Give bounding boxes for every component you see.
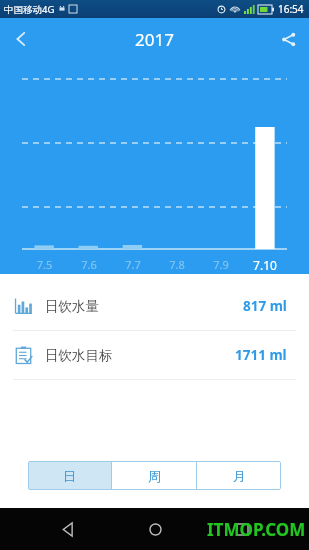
button[interactable]: 月 — [197, 461, 281, 490]
button[interactable]: Back — [48, 509, 88, 549]
button[interactable]: 日饮水目标 — [0, 331, 309, 379]
staticText: 日 — [63, 468, 76, 484]
staticText: 2017 — [42, 28, 267, 51]
staticText: 7.7 — [111, 257, 155, 272]
staticText: ITMOP.COM — [207, 518, 306, 541]
button[interactable]: 日饮水量 — [0, 282, 309, 330]
staticText: 817 ml — [243, 297, 287, 315]
staticText: 周 — [148, 468, 161, 484]
staticText: 1711 ml — [235, 346, 287, 364]
staticText: 7.8 — [155, 257, 199, 272]
staticText: 日饮水量 — [45, 298, 99, 315]
staticText: 月 — [233, 468, 246, 484]
button[interactable]: 周 — [112, 461, 196, 490]
staticText: 7.6 — [67, 257, 111, 272]
staticText: 7.5 — [22, 257, 67, 272]
button[interactable]: Back — [0, 18, 42, 60]
staticText: 16:54 — [278, 2, 304, 16]
staticText: 7.9 — [199, 257, 243, 272]
button[interactable]: Share — [267, 18, 309, 60]
staticText: 7.10 — [243, 257, 287, 273]
staticText: 日饮水目标 — [45, 347, 113, 364]
button[interactable]: Home — [135, 509, 175, 549]
button[interactable]: 日 — [28, 461, 111, 490]
button[interactable]: Recents — [222, 509, 262, 549]
staticText: 中国移动4G — [4, 3, 55, 16]
